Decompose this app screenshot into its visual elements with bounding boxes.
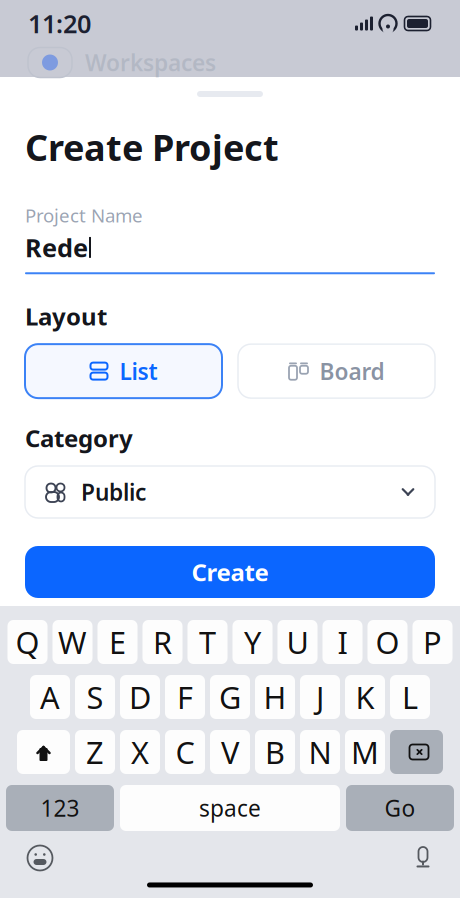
button[interactable]: M	[345, 730, 385, 774]
button[interactable]: Shift	[17, 730, 70, 774]
button[interactable]: List	[25, 344, 222, 398]
button[interactable]: 123	[6, 785, 114, 831]
button[interactable]: H	[255, 675, 295, 719]
staticText: Workspaces	[85, 47, 216, 77]
staticText: A	[40, 677, 60, 717]
staticText: 123	[40, 793, 79, 823]
button[interactable]: K	[345, 675, 385, 719]
staticText: Category	[25, 422, 133, 454]
staticText: Create Project	[25, 123, 279, 171]
staticText: S	[86, 677, 103, 717]
button[interactable]: Z	[75, 730, 115, 774]
button[interactable]: D	[120, 675, 160, 719]
staticText: C	[175, 732, 194, 772]
staticText: B	[265, 732, 285, 772]
staticText: Rede	[25, 231, 88, 264]
button[interactable]: X	[120, 730, 160, 774]
button[interactable]: W	[52, 620, 92, 664]
staticText: O	[375, 622, 399, 662]
staticText: T	[199, 622, 216, 662]
staticText: I	[337, 622, 347, 662]
button[interactable]: T	[187, 620, 227, 664]
button[interactable]: Public	[25, 466, 435, 518]
button[interactable]: S	[75, 675, 115, 719]
staticText: R	[153, 622, 172, 662]
button[interactable]: Dictation	[412, 845, 434, 871]
button[interactable]: N	[300, 730, 340, 774]
button[interactable]: Go	[346, 785, 454, 831]
button[interactable]: G	[210, 675, 250, 719]
button[interactable]: Y	[232, 620, 272, 664]
staticText: X	[131, 732, 149, 772]
button[interactable]: V	[210, 730, 250, 774]
staticText: Q	[15, 622, 39, 662]
button[interactable]: E	[97, 620, 137, 664]
staticText: Y	[244, 622, 261, 662]
button[interactable]: F	[165, 675, 205, 719]
staticText: Project Name	[25, 203, 143, 228]
staticText: Board	[319, 356, 384, 386]
staticText: W	[58, 622, 87, 662]
button[interactable]: O	[367, 620, 407, 664]
button[interactable]: I	[322, 620, 362, 664]
staticText: space	[199, 793, 261, 823]
button[interactable]: L	[390, 675, 430, 719]
staticText: D	[129, 677, 151, 717]
staticText: Z	[86, 732, 104, 772]
staticText: Create	[191, 556, 268, 588]
button[interactable]: B	[255, 730, 295, 774]
staticText: H	[263, 677, 286, 717]
button[interactable]: J	[300, 675, 340, 719]
button[interactable]: Emoji	[26, 844, 54, 872]
staticText: V	[221, 732, 239, 772]
staticText: U	[286, 622, 308, 662]
button[interactable]: U	[277, 620, 317, 664]
button[interactable]: A	[30, 675, 70, 719]
staticText: Go	[384, 793, 415, 823]
staticText: M	[351, 732, 379, 772]
staticText: F	[177, 677, 193, 717]
button[interactable]: R	[142, 620, 182, 664]
staticText: E	[109, 622, 126, 662]
button[interactable]: Q	[7, 620, 47, 664]
button[interactable]: space	[120, 785, 340, 831]
button[interactable]: Create	[25, 546, 435, 598]
staticText: Public	[81, 477, 146, 507]
button[interactable]: Board	[238, 344, 435, 398]
staticText: List	[119, 356, 157, 386]
button[interactable]: Delete	[390, 730, 443, 774]
staticText: N	[308, 732, 331, 772]
staticText: Layout	[25, 300, 107, 332]
staticText: L	[402, 677, 418, 717]
staticText: J	[316, 677, 324, 717]
button[interactable]: P	[412, 620, 452, 664]
staticText: P	[423, 622, 442, 662]
staticText: G	[219, 677, 241, 717]
button[interactable]: C	[165, 730, 205, 774]
staticText: K	[355, 677, 374, 717]
staticText: 11:20	[28, 7, 91, 40]
